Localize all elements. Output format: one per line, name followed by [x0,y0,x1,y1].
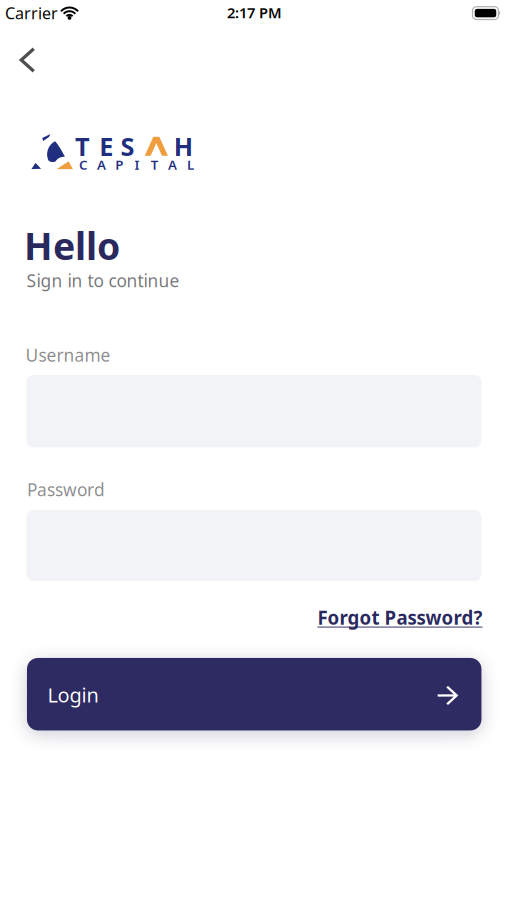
staticText: Hello [24,221,120,270]
staticText: 2:17 PM [227,3,282,22]
staticText: I [134,156,139,173]
staticText: C [79,156,88,173]
button[interactable]: Back [7,39,52,81]
staticText: Username [25,343,110,366]
button[interactable]: Forgot Password? [317,605,482,630]
staticText: S [120,129,134,163]
staticText: A [168,156,177,173]
button[interactable]: Login [27,658,481,730]
staticText: Sign in to continue [26,269,179,292]
staticText: Password [27,478,105,501]
staticText: A [97,156,106,173]
staticText: P [115,156,123,173]
staticText: L [187,156,194,173]
staticText: H [174,129,193,163]
staticText: Forgot Password? [317,605,482,630]
staticText: Carrier [5,2,58,24]
staticText: Login [47,681,98,708]
staticText: T [151,156,159,173]
staticText: T [75,129,90,163]
staticText: E [99,129,113,163]
